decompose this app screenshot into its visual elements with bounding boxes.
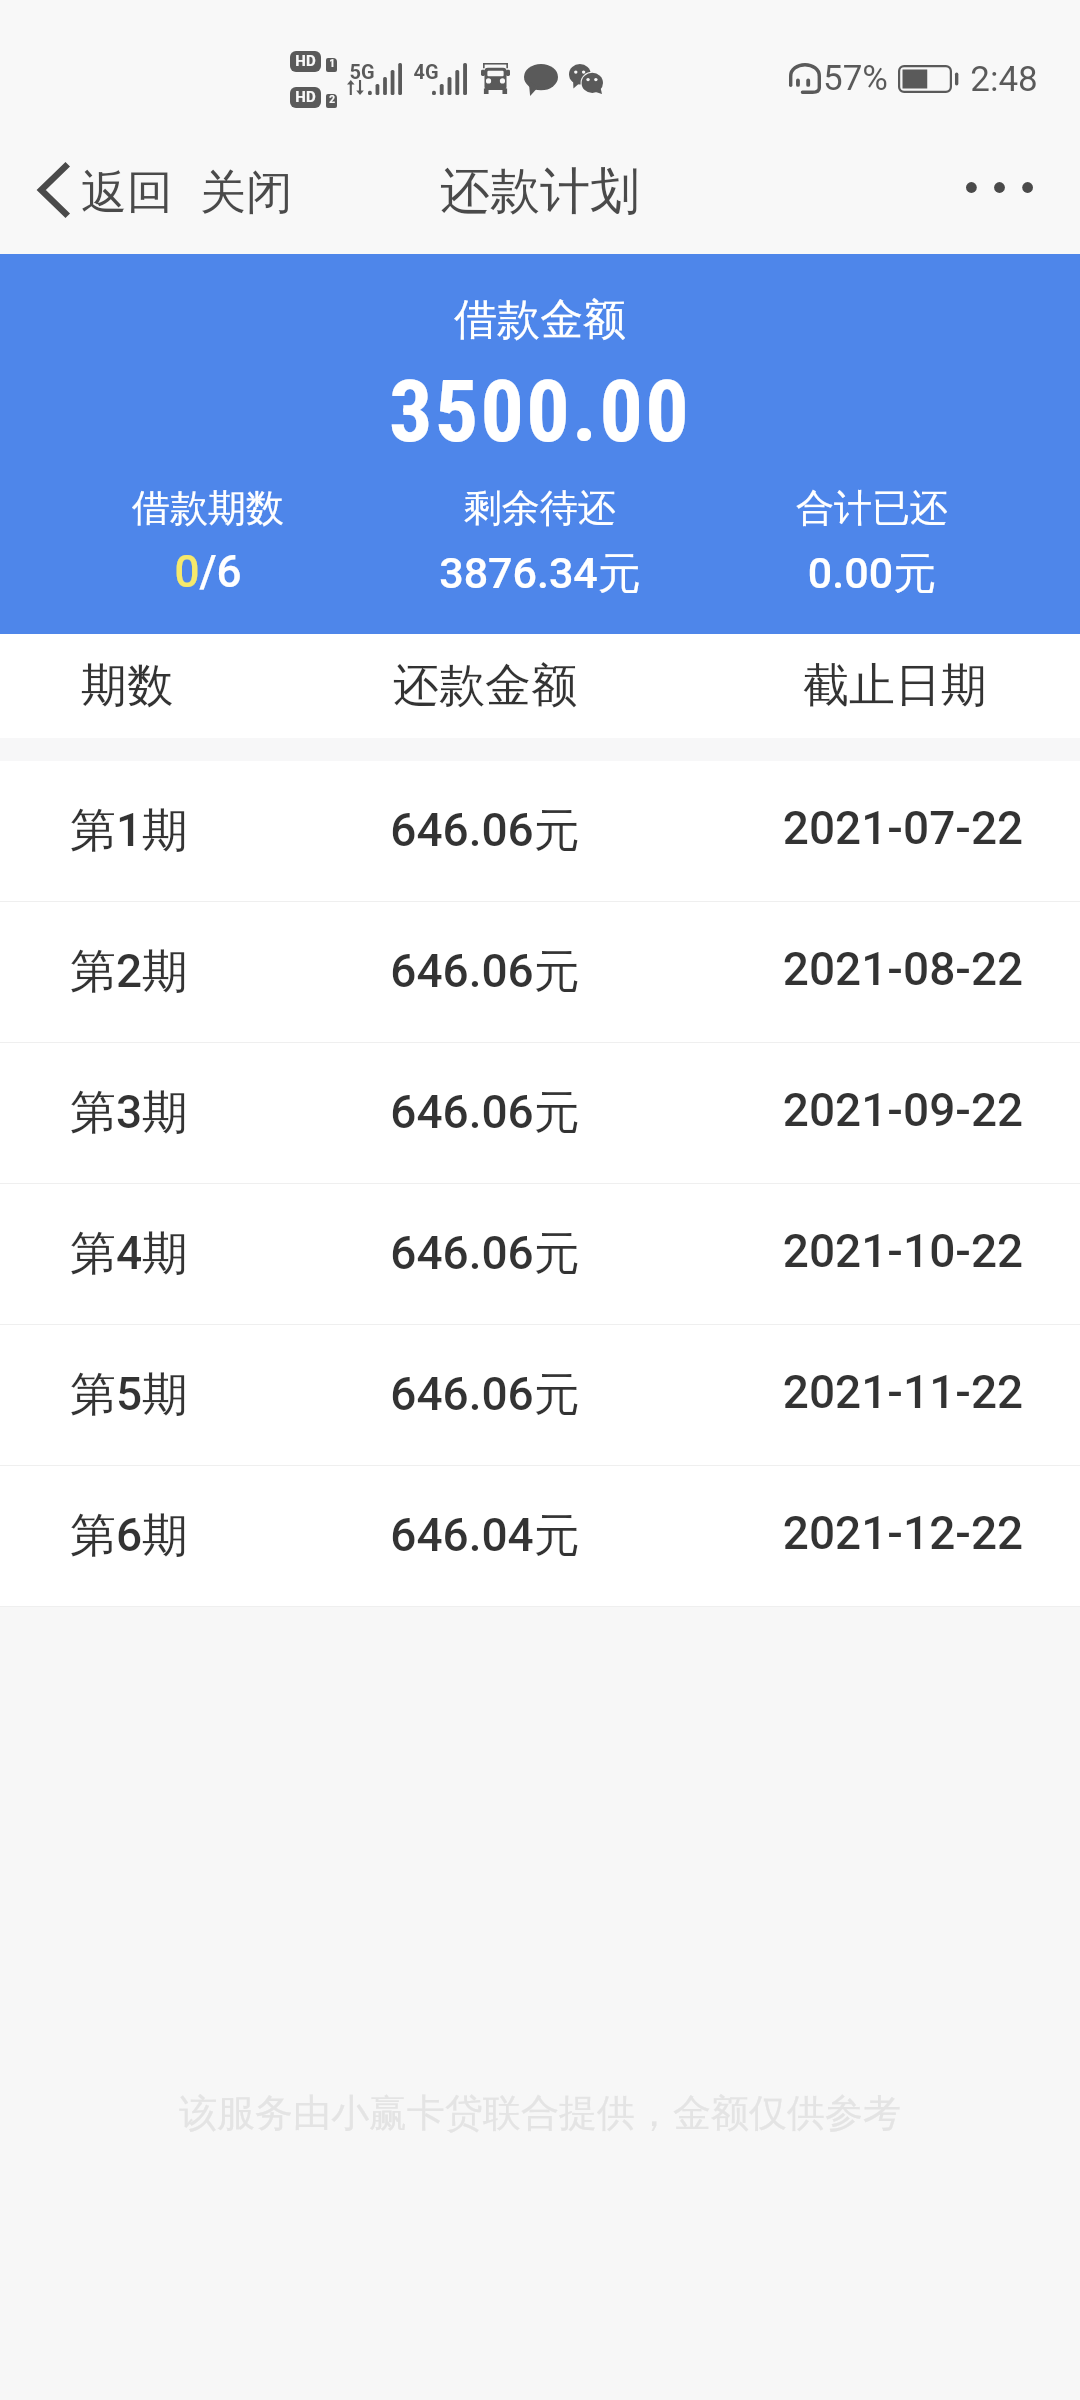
- button[interactable]: 第4期: [0, 1184, 1080, 1324]
- staticText: 0/6: [42, 546, 374, 598]
- button[interactable]: 第2期: [0, 902, 1080, 1042]
- staticText: 5G: [349, 60, 375, 83]
- staticText: 关闭: [200, 164, 292, 222]
- staticText: 2: [329, 94, 335, 106]
- staticText: 646.06元: [254, 1225, 716, 1283]
- staticText: 646.04元: [254, 1507, 716, 1565]
- button[interactable]: 第6期: [0, 1466, 1080, 1606]
- staticText: 截止日期: [713, 657, 1077, 715]
- staticText: 2021-08-22: [721, 942, 1080, 996]
- staticText: 剩余待还: [374, 484, 706, 532]
- button[interactable]: 关闭: [186, 147, 306, 237]
- staticText: 2021-09-22: [721, 1083, 1080, 1137]
- button[interactable]: 第3期: [0, 1043, 1080, 1183]
- staticText: 期数: [0, 657, 254, 715]
- staticText: 第5期: [2, 1366, 256, 1424]
- staticText: 第2期: [2, 943, 256, 1001]
- staticText: 借款金额: [0, 293, 1080, 347]
- staticText: 1: [329, 58, 335, 70]
- staticText: HD: [295, 88, 316, 106]
- staticText: 该服务由小赢卡贷联合提供，金额仅供参考: [0, 2089, 1080, 2137]
- staticText: 646.06元: [254, 943, 716, 1001]
- staticText: 借款期数: [42, 484, 374, 532]
- staticText: 第1期: [2, 802, 256, 860]
- staticText: 第3期: [2, 1084, 256, 1142]
- button[interactable]: 返回: [0, 149, 187, 235]
- staticText: 646.06元: [254, 1366, 716, 1424]
- staticText: 0.00元: [706, 547, 1038, 601]
- staticText: 2021-10-22: [721, 1224, 1080, 1278]
- button[interactable]: More options: [945, 155, 1060, 230]
- staticText: 还款计划: [440, 160, 640, 223]
- staticText: 2021-07-22: [721, 801, 1080, 855]
- staticText: 2021-11-22: [721, 1365, 1080, 1419]
- staticText: 3876.34元: [374, 547, 706, 601]
- staticText: 第4期: [2, 1225, 256, 1283]
- staticText: 4G: [413, 60, 439, 83]
- staticText: 还款金额: [254, 657, 716, 715]
- staticText: 返回: [81, 164, 173, 222]
- staticText: 合计已还: [706, 484, 1038, 532]
- staticText: 2:48: [970, 59, 1038, 100]
- staticText: 第6期: [2, 1507, 256, 1565]
- staticText: 2021-12-22: [721, 1506, 1080, 1560]
- staticText: 57%: [823, 58, 888, 99]
- staticText: HD: [295, 52, 316, 70]
- button[interactable]: 第5期: [0, 1325, 1080, 1465]
- staticText: 3500.00: [0, 361, 1080, 462]
- button[interactable]: 第1期: [0, 761, 1080, 901]
- staticText: 646.06元: [254, 802, 716, 860]
- staticText: 646.06元: [254, 1084, 716, 1142]
